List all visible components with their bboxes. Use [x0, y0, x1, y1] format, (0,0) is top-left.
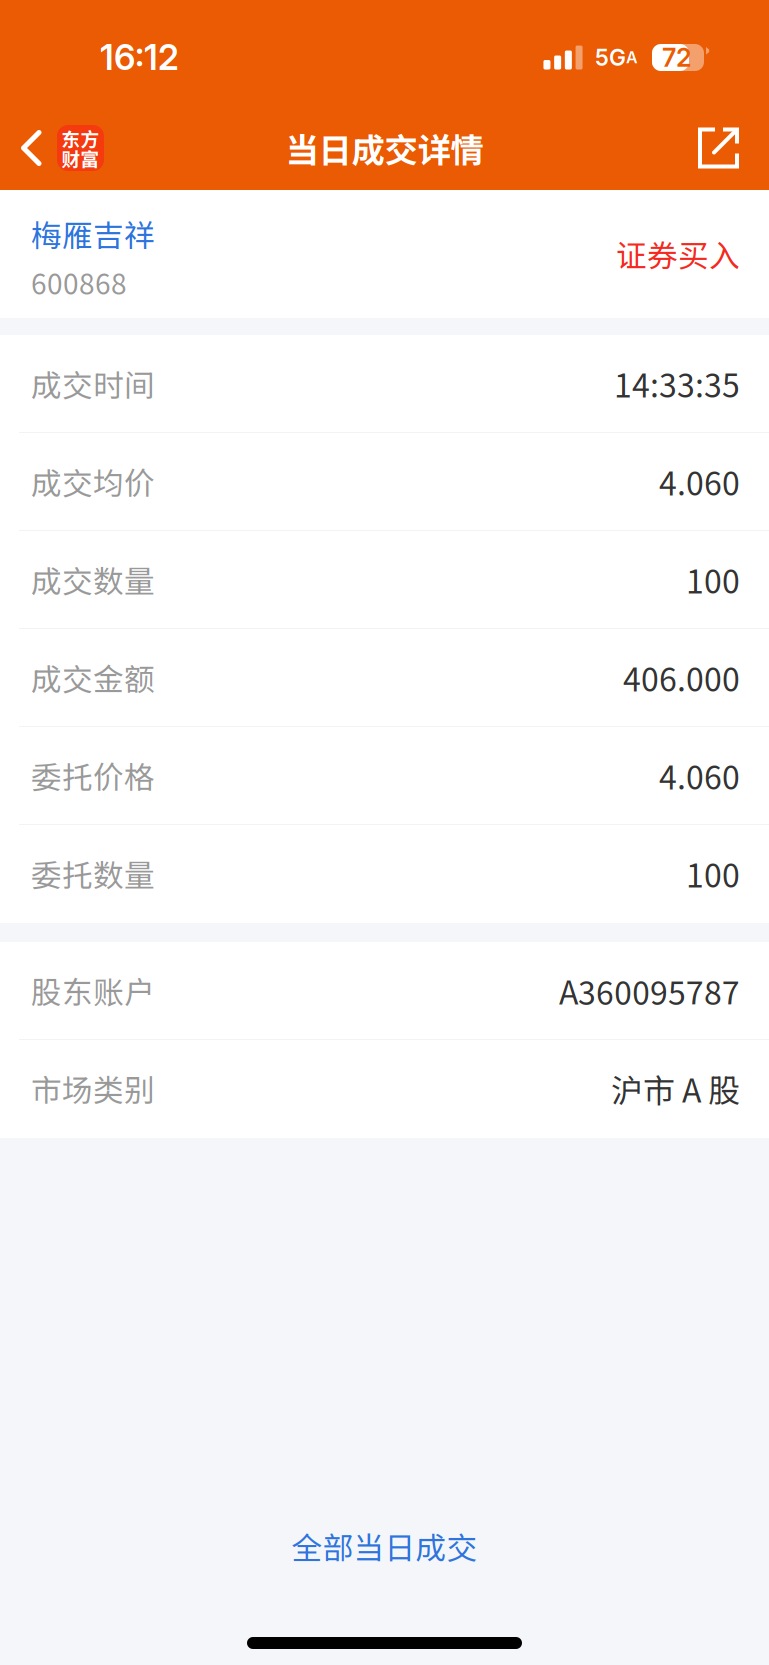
staticText: 4.060	[659, 752, 740, 799]
staticText: 100	[686, 556, 740, 603]
staticText: 406.000	[623, 654, 740, 701]
staticText: 72	[662, 42, 692, 73]
staticText: 委托价格	[31, 753, 155, 798]
staticText: 财富	[61, 144, 99, 171]
staticText: 股东账户	[31, 968, 155, 1013]
staticText: 市场类别	[31, 1066, 155, 1111]
staticText: 14:33:35	[614, 360, 740, 407]
staticText: 全部当日成交	[291, 1524, 477, 1568]
staticText: 16:12	[100, 36, 179, 78]
staticText: 成交均价	[31, 459, 155, 504]
button[interactable]: 分享	[678, 106, 769, 190]
staticText: 5G	[595, 44, 626, 71]
staticText: 梅雁吉祥	[31, 211, 155, 256]
staticText: A360095787	[559, 967, 740, 1014]
staticText: 100	[686, 850, 740, 897]
staticText: 成交金额	[31, 655, 155, 700]
staticText: 沪市 A 股	[611, 1065, 740, 1112]
staticText: 委托数量	[31, 851, 155, 896]
staticText: 成交时间	[31, 361, 155, 406]
staticText: 当日成交详情	[285, 124, 483, 172]
button[interactable]: 返回	[0, 106, 118, 190]
staticText: A	[626, 48, 638, 67]
staticText: 成交数量	[31, 557, 155, 602]
staticText: 东方	[61, 124, 99, 151]
staticText: 4.060	[659, 458, 740, 505]
staticText: 600868	[31, 262, 127, 302]
button[interactable]: 全部当日成交	[0, 1504, 769, 1588]
staticText: 证券买入	[616, 231, 740, 276]
